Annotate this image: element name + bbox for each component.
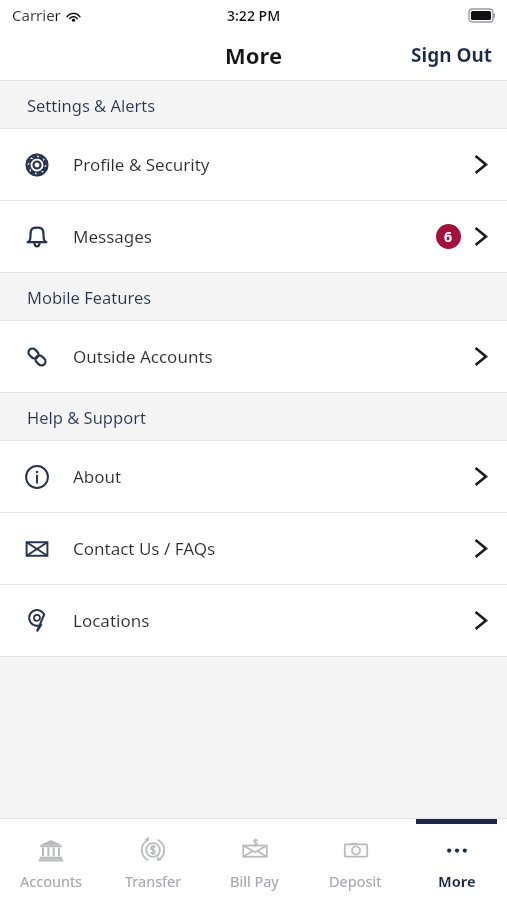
button[interactable]: Messages <box>0 201 507 272</box>
staticText: Mobile Features <box>27 286 152 308</box>
staticText: Messages <box>73 225 153 248</box>
staticText: Bill Pay <box>230 871 279 891</box>
button[interactable]: About <box>0 441 507 512</box>
button[interactable]: Transfer <box>102 819 204 900</box>
staticText: More <box>438 871 476 891</box>
staticText: About <box>73 465 122 488</box>
button[interactable]: More <box>406 819 507 900</box>
button[interactable]: Profile & Security <box>0 129 507 200</box>
staticText: Profile & Security <box>73 153 210 176</box>
staticText: More <box>225 40 283 70</box>
staticText: Deposit <box>329 871 382 891</box>
button[interactable]: Outside Accounts <box>0 321 507 392</box>
button[interactable]: Sign Out <box>397 36 507 74</box>
button[interactable]: Locations <box>0 585 507 656</box>
staticText: 6 <box>444 227 453 246</box>
button[interactable]: Bill Pay <box>204 819 305 900</box>
staticText: 3:22 PM <box>227 6 281 25</box>
staticText: Accounts <box>20 871 83 891</box>
staticText: Outside Accounts <box>73 345 213 368</box>
staticText: Locations <box>73 609 150 632</box>
staticText: Transfer <box>125 871 182 891</box>
staticText: Settings & Alerts <box>27 94 156 116</box>
button[interactable]: Contact Us / FAQs <box>0 513 507 584</box>
staticText: Sign Out <box>411 42 493 68</box>
staticText: Help & Support <box>27 406 146 428</box>
button[interactable]: Deposit <box>305 819 406 900</box>
staticText: Carrier <box>12 5 61 25</box>
staticText: Contact Us / FAQs <box>73 537 216 560</box>
button[interactable]: Accounts <box>0 819 102 900</box>
